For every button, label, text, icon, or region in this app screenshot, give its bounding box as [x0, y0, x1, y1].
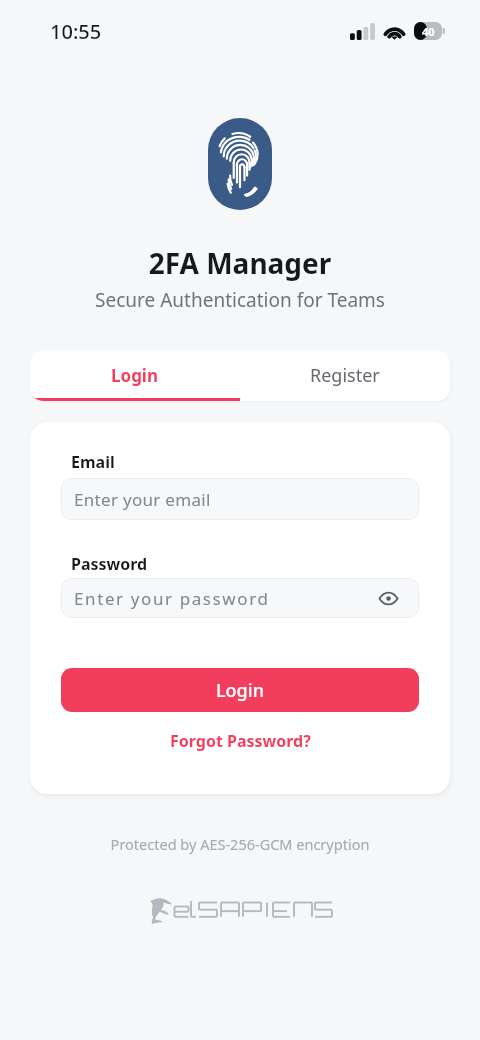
- staticText: Login: [216, 678, 264, 703]
- button[interactable]: Forgot Password?: [170, 730, 311, 752]
- staticText: 40: [422, 24, 435, 39]
- button[interactable]: Enter your password: [61, 578, 419, 618]
- button[interactable]: Login: [61, 668, 419, 712]
- staticText: Register: [310, 363, 380, 388]
- staticText: Password: [71, 553, 148, 575]
- button[interactable]: Enter your email: [61, 478, 419, 520]
- button[interactable]: Register: [240, 350, 450, 401]
- staticText: Login: [111, 364, 159, 387]
- staticText: Protected by AES-256-GCM encryption: [0, 834, 480, 854]
- staticText: Secure Authentication for Teams: [0, 287, 480, 313]
- staticText: Enter your email: [74, 488, 211, 511]
- staticText: Enter your password: [74, 587, 270, 610]
- staticText: 2FA Manager: [0, 244, 480, 282]
- staticText: Email: [71, 451, 115, 473]
- button[interactable]: Login: [30, 350, 240, 401]
- staticText: 10:55: [50, 18, 102, 45]
- button[interactable]: Show password: [375, 585, 401, 611]
